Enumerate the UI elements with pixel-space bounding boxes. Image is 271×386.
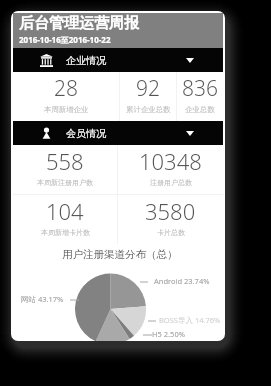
other: Expand 企业情况 (186, 58, 194, 63)
other: Expand 会员情况 (186, 131, 194, 136)
staticText: 累计企业总数 (126, 105, 171, 114)
staticText: 企业总数 (185, 105, 215, 114)
staticText: 3580 (145, 196, 196, 226)
staticText: 558 (46, 146, 84, 176)
staticText: 网站 43.17% (21, 294, 64, 304)
button[interactable]: 92 (120, 72, 176, 121)
staticText: 2016-10-16至2016-10-22 (19, 34, 111, 45)
staticText: 本周新增卡片数 (41, 228, 90, 237)
button[interactable]: 10348 (118, 145, 223, 194)
staticText: H5 2.50% (152, 329, 185, 339)
button[interactable]: 836 (177, 72, 223, 121)
staticText: 用户注册渠道分布（总） (62, 248, 178, 261)
staticText: 本周新注册用户数 (37, 178, 93, 187)
button[interactable]: 28 (13, 72, 119, 121)
button[interactable]: 企业情况 (13, 48, 223, 72)
staticText: 后台管理运营周报 (19, 14, 139, 33)
staticText: 会员情况 (66, 127, 106, 140)
button[interactable]: 104 (13, 195, 117, 244)
staticText: 104 (46, 196, 84, 226)
staticText: 10348 (139, 146, 202, 176)
staticText: 企业情况 (66, 54, 106, 67)
staticText: Android 23.74% (154, 276, 210, 286)
button[interactable]: 558 (13, 145, 117, 194)
staticText: BOSS导入 14.76% (159, 315, 221, 325)
staticText: 92 (136, 74, 160, 103)
staticText: 卡片总数 (157, 228, 185, 237)
staticText: 28 (54, 74, 78, 103)
staticText: 注册用户总数 (150, 178, 192, 187)
button[interactable]: 3580 (118, 195, 223, 244)
staticText: 836 (182, 74, 218, 103)
button[interactable]: 会员情况 (13, 121, 223, 145)
staticText: 本周新增企业 (44, 105, 89, 114)
